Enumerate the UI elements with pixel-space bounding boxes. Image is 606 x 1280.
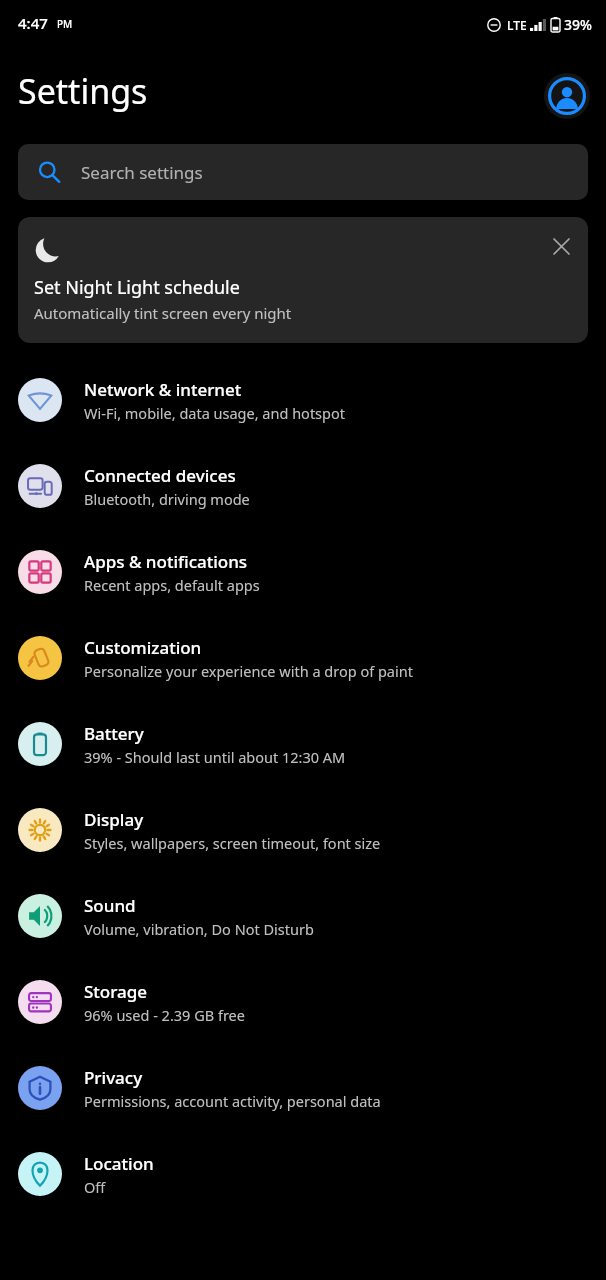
staticText: Personalize your experience with a drop …: [84, 661, 413, 681]
staticText: Storage: [84, 980, 148, 1003]
button[interactable]: Privacy: [0, 1045, 606, 1131]
staticText: LTE: [507, 17, 527, 33]
staticText: Automatically tint screen every night: [34, 303, 292, 323]
button[interactable]: Location: [0, 1131, 606, 1217]
staticText: Styles, wallpapers, screen timeout, font…: [84, 833, 381, 853]
staticText: Network & internet: [84, 378, 242, 401]
button[interactable]: Network & internet: [0, 357, 606, 443]
button[interactable]: Sound: [0, 873, 606, 959]
staticText: Privacy: [84, 1066, 143, 1089]
staticText: 96% used - 2.39 GB free: [84, 1005, 245, 1025]
staticText: 39%: [564, 15, 592, 34]
staticText: Bluetooth, driving mode: [84, 489, 250, 509]
staticText: Volume, vibration, Do Not Disturb: [84, 919, 314, 939]
button[interactable]: Customization: [0, 615, 606, 701]
staticText: Search settings: [81, 161, 203, 184]
staticText: 39% - Should last until about 12:30 AM: [84, 747, 346, 767]
staticText: Display: [84, 808, 144, 831]
staticText: Apps & notifications: [84, 550, 248, 573]
staticText: PM: [57, 17, 73, 31]
button[interactable]: Dismiss: [544, 229, 578, 263]
button[interactable]: Search settings: [18, 144, 588, 200]
button[interactable]: Battery: [0, 701, 606, 787]
staticText: Set Night Light schedule: [34, 275, 240, 300]
staticText: Recent apps, default apps: [84, 575, 260, 595]
staticText: Battery: [84, 722, 144, 745]
button[interactable]: Display: [0, 787, 606, 873]
staticText: Permissions, account activity, personal …: [84, 1091, 381, 1111]
staticText: Off: [84, 1177, 106, 1197]
staticText: 4:47: [18, 13, 48, 33]
button[interactable]: Connected devices: [0, 443, 606, 529]
button[interactable]: Account: [544, 73, 590, 119]
button[interactable]: Storage: [0, 959, 606, 1045]
staticText: Settings: [18, 68, 148, 114]
button[interactable]: Apps & notifications: [0, 529, 606, 615]
staticText: Sound: [84, 894, 136, 917]
staticText: Wi-Fi, mobile, data usage, and hotspot: [84, 403, 345, 423]
button[interactable]: Set Night Light schedule: [18, 217, 588, 343]
staticText: Connected devices: [84, 464, 236, 487]
staticText: Customization: [84, 636, 202, 659]
staticText: Location: [84, 1152, 154, 1175]
